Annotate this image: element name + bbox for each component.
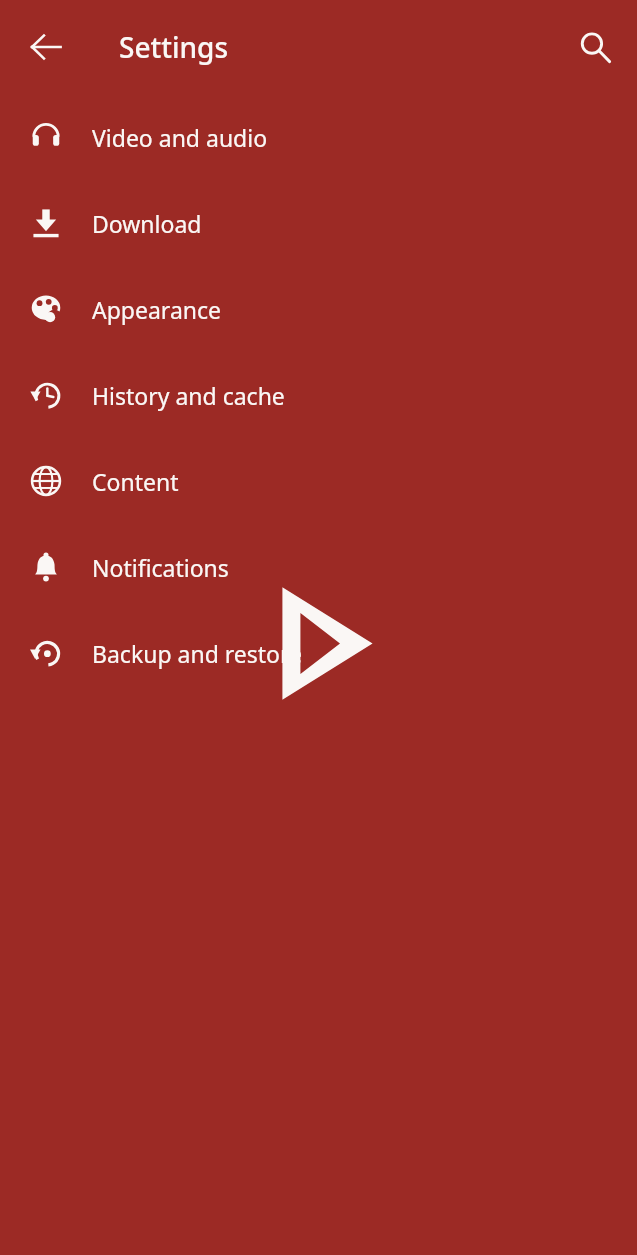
- button[interactable]: Content: [0, 438, 637, 524]
- staticText: Settings: [119, 28, 229, 66]
- button[interactable]: Appearance: [0, 266, 637, 352]
- button[interactable]: Back: [10, 11, 82, 83]
- button[interactable]: History and cache: [0, 352, 637, 438]
- staticText: Appearance: [92, 294, 222, 325]
- button[interactable]: Search: [559, 11, 631, 83]
- button[interactable]: Download: [0, 180, 637, 266]
- staticText: Notifications: [92, 552, 229, 583]
- button[interactable]: Notifications: [0, 524, 637, 610]
- button[interactable]: Backup and restore: [0, 610, 637, 696]
- button[interactable]: Video and audio: [0, 94, 637, 180]
- staticText: History and cache: [92, 380, 285, 411]
- staticText: Video and audio: [92, 122, 268, 153]
- staticText: Content: [92, 466, 179, 497]
- staticText: Backup and restore: [92, 638, 303, 669]
- staticText: Download: [92, 208, 202, 239]
